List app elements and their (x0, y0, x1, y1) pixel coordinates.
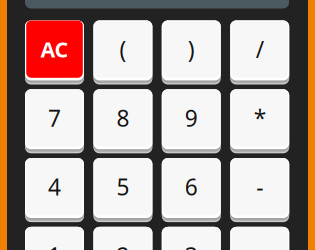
button[interactable]: - (230, 158, 289, 222)
staticText: 5 (116, 172, 129, 202)
staticText: ( (119, 34, 126, 64)
button[interactable]: ) (162, 20, 221, 84)
button[interactable]: 5 (93, 158, 152, 222)
button[interactable]: + (230, 227, 289, 250)
staticText: 1 (48, 240, 61, 250)
button[interactable]: 8 (93, 89, 152, 153)
button[interactable]: ( (93, 20, 152, 84)
staticText: 2 (116, 240, 129, 250)
staticText: 6 (185, 172, 198, 202)
staticText: AC (40, 35, 68, 63)
button[interactable]: / (230, 20, 289, 84)
button[interactable]: 4 (25, 158, 84, 222)
staticText: 8 (116, 103, 129, 133)
button[interactable]: * (230, 89, 289, 153)
button[interactable]: 3 (162, 227, 221, 250)
button[interactable]: 1 (25, 227, 84, 250)
button[interactable]: 2 (93, 227, 152, 250)
staticText: 4 (48, 172, 61, 202)
staticText: - (256, 172, 263, 202)
staticText: 9 (185, 103, 198, 133)
staticText: * (254, 103, 266, 133)
button[interactable]: 7 (25, 89, 84, 153)
button[interactable]: 9 (162, 89, 221, 153)
staticText: / (256, 34, 264, 64)
button[interactable]: 6 (162, 158, 221, 222)
staticText: ) (188, 34, 195, 64)
staticText: 3 (185, 240, 198, 250)
button[interactable]: AC (25, 20, 84, 84)
staticText: 7 (48, 103, 61, 133)
